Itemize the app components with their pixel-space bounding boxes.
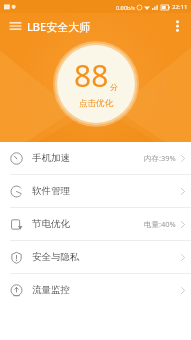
button[interactable]: Menu xyxy=(6,17,24,35)
staticText: LBE安全大师 xyxy=(27,19,91,34)
staticText: 0.00b/s xyxy=(116,4,135,11)
button[interactable]: More options xyxy=(168,17,186,35)
button[interactable]: 安全与隐私 xyxy=(0,241,191,273)
staticText: 分 xyxy=(110,82,118,92)
staticText: 流量监控 xyxy=(32,284,70,296)
staticText: 手机加速 xyxy=(32,152,70,164)
staticText: 节电优化 xyxy=(32,218,70,230)
staticText: 88 xyxy=(74,55,109,96)
button[interactable]: 流量监控 xyxy=(0,274,191,306)
button[interactable]: 软件管理 xyxy=(0,175,191,207)
button[interactable]: 节电优化 xyxy=(0,208,191,240)
button[interactable]: 手机加速 xyxy=(0,142,191,174)
button[interactable]: 88 xyxy=(53,41,139,127)
staticText: 电量:40% xyxy=(144,219,176,229)
staticText: 安全与隐私 xyxy=(32,251,80,263)
staticText: 点击优化 xyxy=(79,98,113,109)
staticText: 22:11 xyxy=(172,3,188,11)
staticText: 软件管理 xyxy=(32,185,70,197)
staticText: 内存:39% xyxy=(144,153,176,163)
